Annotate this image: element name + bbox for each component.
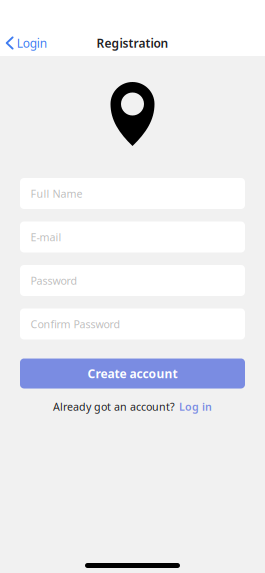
- button[interactable]: Back to Login: [0, 29, 47, 57]
- button[interactable]: Already got an account?: [47, 397, 218, 416]
- button[interactable]: E-mail: [20, 221, 245, 252]
- staticText: Login: [17, 35, 47, 51]
- staticText: Already got an account?: [53, 399, 175, 414]
- button[interactable]: Password: [20, 265, 245, 296]
- button[interactable]: Create account: [20, 358, 245, 388]
- staticText: Confirm Password: [30, 317, 120, 331]
- staticText: Password: [30, 273, 77, 288]
- button[interactable]: Full Name: [20, 178, 245, 209]
- staticText: Log in: [179, 399, 212, 414]
- staticText: E-mail: [30, 230, 61, 244]
- staticText: Create account: [87, 365, 177, 381]
- staticText: Registration: [96, 35, 168, 51]
- staticText: Full Name: [30, 186, 82, 201]
- button[interactable]: Confirm Password: [20, 308, 245, 339]
